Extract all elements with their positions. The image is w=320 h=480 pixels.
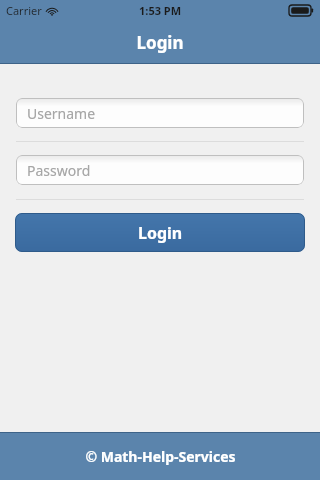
other: Wi-Fi signal [46, 6, 58, 16]
staticText: Carrier [6, 3, 42, 18]
staticText: Username [27, 104, 96, 123]
button[interactable]: © Math-Help-Services [0, 432, 320, 480]
button[interactable]: Password [16, 155, 304, 185]
staticText: Password [27, 161, 91, 180]
staticText: 1:53 PM [139, 3, 182, 18]
button[interactable]: Username [16, 98, 304, 128]
staticText: Login [136, 31, 184, 54]
other: Battery full [289, 5, 314, 16]
button[interactable]: Login [15, 213, 305, 252]
staticText: Login [138, 222, 183, 244]
staticText: © Math-Help-Services [85, 447, 236, 466]
